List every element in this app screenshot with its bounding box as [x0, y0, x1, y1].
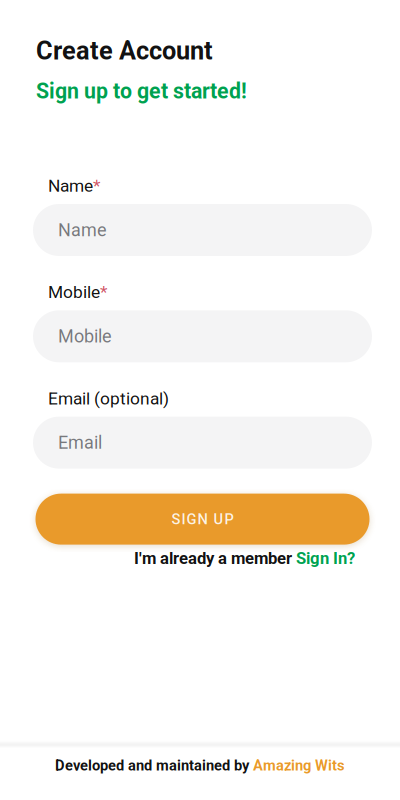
staticText: S I G N U P: [171, 510, 233, 528]
staticText: Mobile: [58, 326, 112, 347]
button[interactable]: I'm already a member: [33, 549, 372, 568]
staticText: Sign up to get started!: [36, 79, 247, 104]
staticText: Developed and maintained by: [55, 757, 253, 774]
staticText: Mobile: [48, 282, 100, 302]
staticText: Create Account: [36, 36, 213, 66]
staticText: Email: [58, 432, 102, 453]
staticText: Email (optional): [48, 388, 169, 409]
staticText: Amazing Wits: [253, 757, 345, 774]
staticText: I'm already a member: [134, 549, 296, 568]
staticText: *: [100, 282, 107, 302]
staticText: Name: [58, 219, 107, 241]
button[interactable]: S I G N U P: [35, 494, 369, 545]
staticText: Name: [48, 176, 93, 196]
staticText: *: [93, 176, 100, 196]
staticText: Sign In?: [296, 549, 355, 568]
